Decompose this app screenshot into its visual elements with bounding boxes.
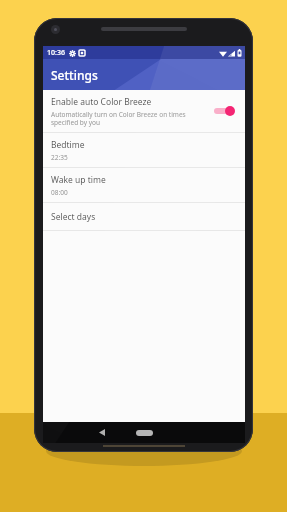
staticText: Automatically turn on Color Breeze on ti…: [51, 110, 205, 127]
button[interactable]: Enable auto Color Breeze: [43, 90, 245, 132]
button[interactable]: Bedtime: [43, 133, 245, 167]
staticText: Wake up time: [51, 174, 106, 186]
button[interactable]: Wake up time: [43, 168, 245, 202]
button[interactable]: Select days: [43, 203, 245, 230]
button[interactable]: Home: [127, 422, 161, 443]
staticText: 08:00: [51, 188, 68, 197]
staticText: 22:35: [51, 153, 68, 162]
staticText: Select days: [51, 211, 96, 223]
staticText: Enable auto Color Breeze: [51, 96, 152, 108]
button[interactable]: Back: [91, 422, 113, 443]
staticText: Settings: [51, 67, 98, 83]
staticText: 10:36: [47, 48, 65, 58]
staticText: Bedtime: [51, 139, 85, 151]
button[interactable]: [211, 102, 237, 120]
